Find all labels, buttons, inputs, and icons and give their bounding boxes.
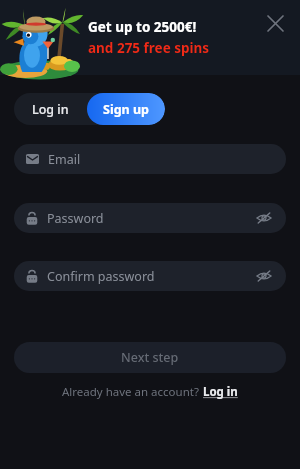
- button[interactable]: Show password: [254, 266, 274, 286]
- staticText: Log in: [203, 384, 238, 400]
- button[interactable]: Confirm password: [14, 261, 286, 291]
- button[interactable]: Email: [14, 144, 286, 174]
- button[interactable]: Show password: [254, 208, 274, 228]
- button[interactable]: Log in: [14, 93, 87, 125]
- staticText: Log in: [32, 101, 69, 118]
- staticText: Email: [48, 151, 81, 168]
- staticText: Get up to 2500€!: [88, 18, 197, 36]
- staticText: Confirm password: [47, 268, 155, 285]
- staticText: and 275 free spins: [88, 39, 210, 57]
- staticText: Next step: [121, 349, 179, 366]
- button[interactable]: Close: [260, 8, 290, 38]
- button[interactable]: Sign up: [87, 93, 165, 125]
- button[interactable]: Password: [14, 203, 286, 233]
- staticText: Already have an account?: [62, 384, 199, 400]
- button[interactable]: Log in: [203, 384, 238, 400]
- button[interactable]: Next step: [14, 342, 286, 373]
- staticText: Password: [47, 210, 104, 227]
- staticText: Sign up: [103, 101, 149, 118]
